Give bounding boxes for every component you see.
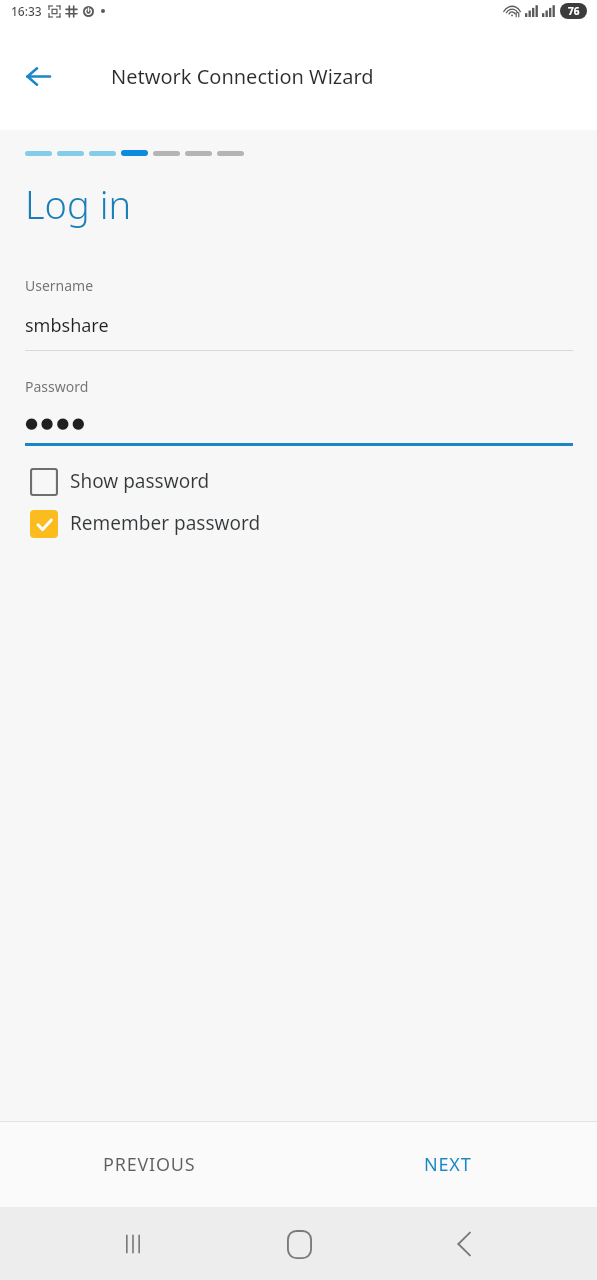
- button[interactable]: NEXT: [298, 1152, 597, 1177]
- button[interactable]: Back: [432, 1212, 496, 1276]
- button[interactable]: Home: [267, 1212, 331, 1276]
- staticText: Show password: [70, 468, 210, 494]
- staticText: PREVIOUS: [103, 1152, 196, 1177]
- staticText: 16:33: [11, 3, 42, 19]
- staticText: ●●●●: [25, 414, 88, 431]
- button[interactable]: Recents: [101, 1212, 165, 1276]
- button[interactable]: Remember password: [30, 510, 573, 538]
- staticText: smbshare: [25, 313, 109, 338]
- button[interactable]: PREVIOUS: [0, 1152, 298, 1177]
- staticText: Remember password: [70, 510, 261, 536]
- button[interactable]: Show password: [30, 468, 573, 496]
- staticText: NEXT: [424, 1152, 472, 1177]
- staticText: 76: [568, 4, 580, 18]
- button[interactable]: Password: [25, 377, 573, 446]
- staticText: Password: [25, 377, 89, 396]
- button[interactable]: Back: [14, 52, 62, 100]
- staticText: Network Connection Wizard: [111, 63, 374, 90]
- staticText: Username: [25, 276, 94, 295]
- button[interactable]: Username: [25, 276, 573, 351]
- staticText: Log in: [25, 178, 132, 230]
